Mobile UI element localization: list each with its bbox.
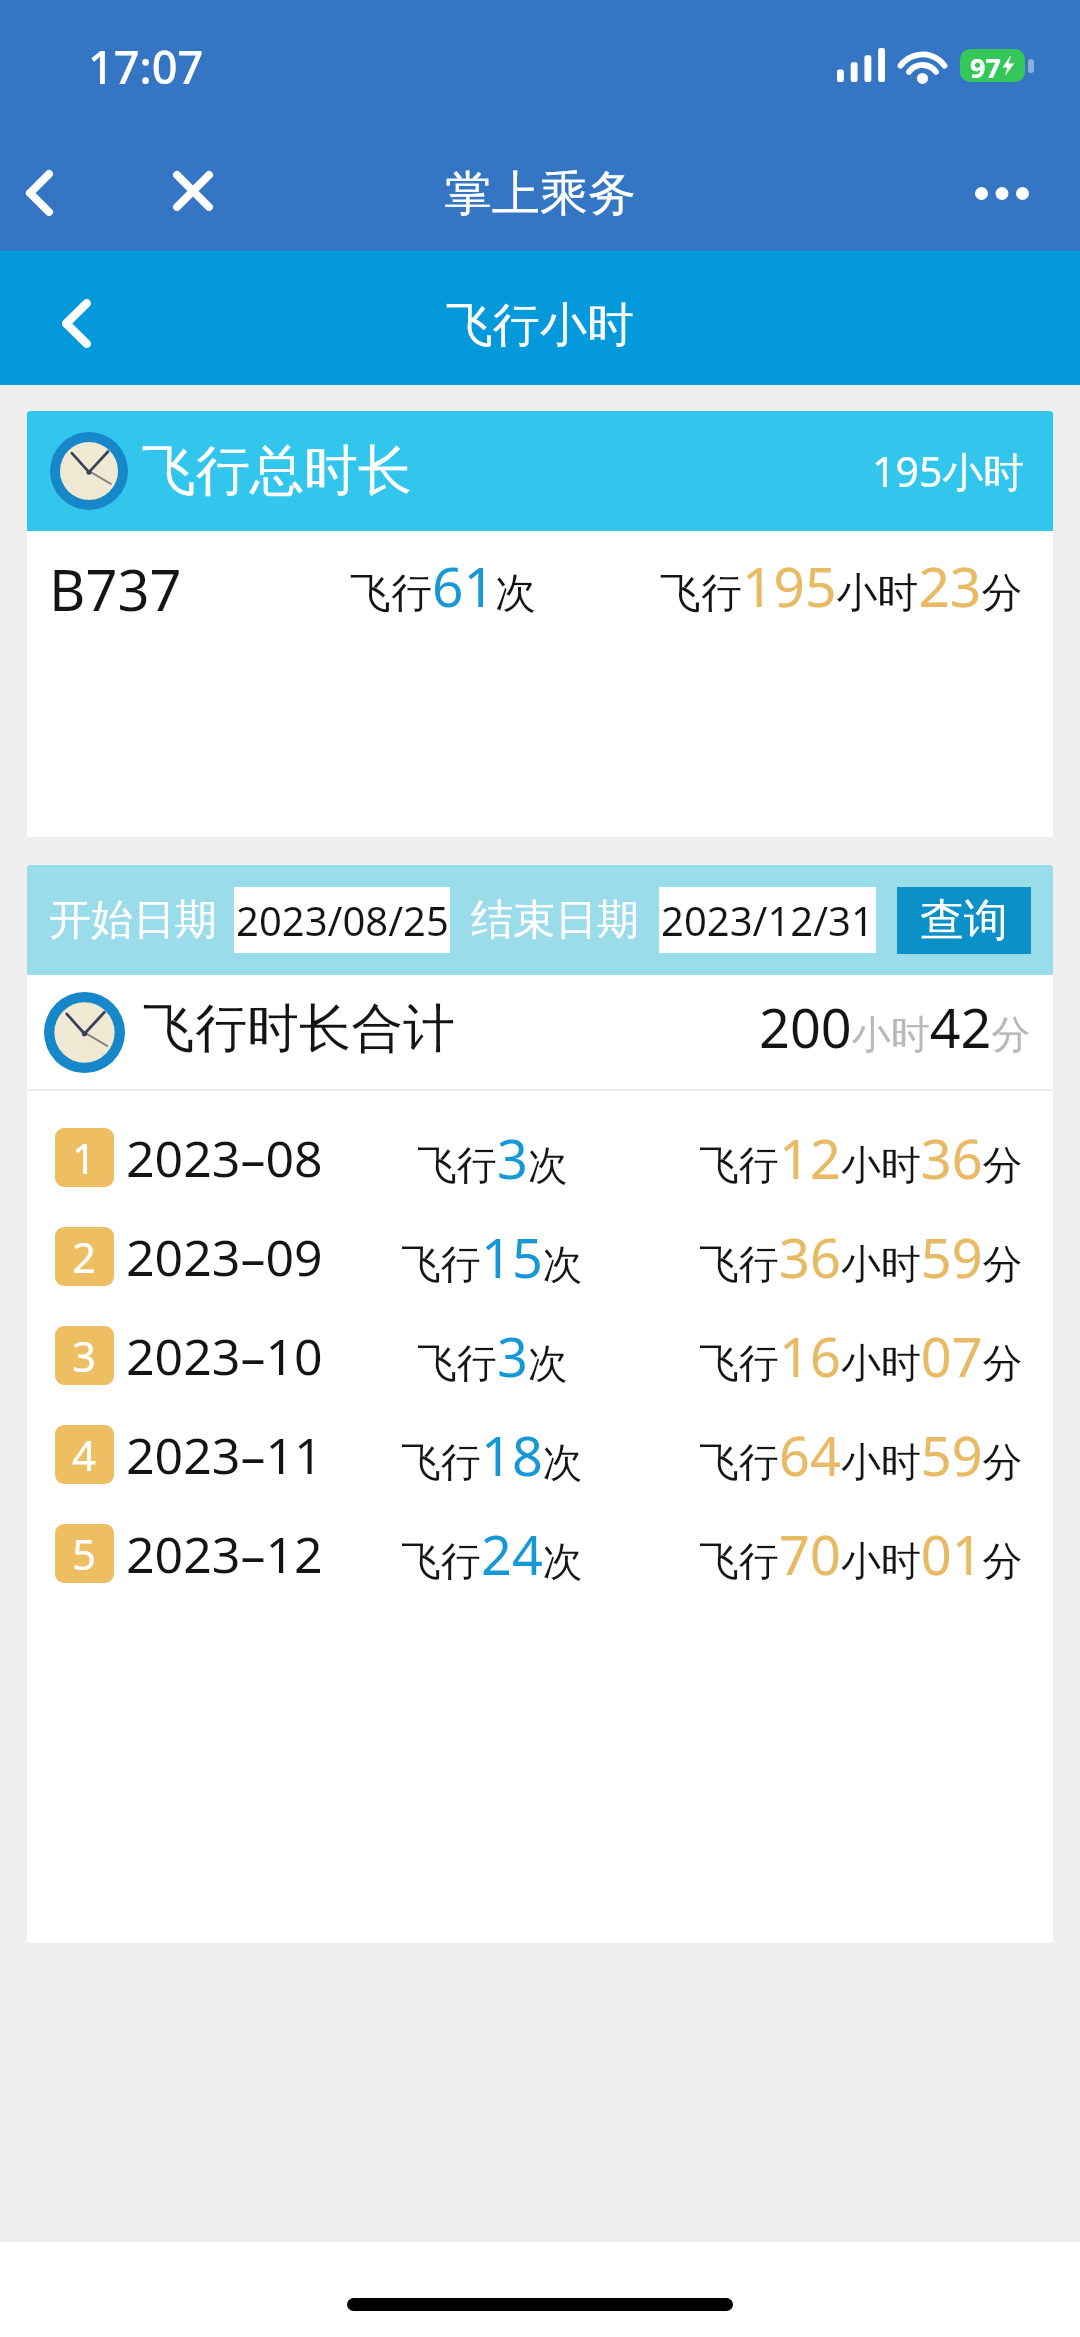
- button[interactable]: More options: [952, 143, 1052, 243]
- button[interactable]: Close: [143, 141, 243, 241]
- staticText: 5: [72, 1525, 97, 1582]
- staticText: 飞行总时长: [142, 437, 412, 505]
- staticText: 飞行36小时59分: [699, 1220, 1023, 1294]
- staticText: 195小时: [872, 443, 1025, 499]
- staticText: 飞行3次: [417, 1121, 568, 1195]
- button[interactable]: 5: [27, 1504, 1053, 1603]
- staticText: 飞行时长合计: [143, 996, 455, 1062]
- staticText: 飞行18次: [401, 1418, 583, 1492]
- button[interactable]: 4: [27, 1405, 1053, 1504]
- button[interactable]: 2023/08/25: [234, 887, 450, 953]
- staticText: 飞行24次: [401, 1517, 583, 1591]
- staticText: 飞行195小时23分: [660, 548, 1023, 623]
- staticText: B737: [49, 551, 182, 627]
- staticText: 飞行12小时36分: [699, 1121, 1023, 1195]
- staticText: 2023/12/31: [661, 893, 874, 947]
- staticText: 1: [72, 1129, 97, 1186]
- staticText: 2023/08/25: [236, 893, 449, 947]
- button[interactable]: 2023/12/31: [659, 887, 876, 953]
- button[interactable]: 1: [27, 1108, 1053, 1207]
- staticText: 3: [72, 1327, 97, 1384]
- staticText: 2023–11: [126, 1421, 323, 1489]
- staticText: 飞行64小时59分: [699, 1418, 1023, 1492]
- staticText: 飞行小时: [446, 296, 634, 355]
- staticText: 掌上乘务: [444, 164, 636, 224]
- button[interactable]: 查询: [897, 887, 1031, 954]
- staticText: 17:07: [88, 36, 204, 97]
- staticText: 4: [72, 1426, 97, 1483]
- staticText: 飞行61次: [350, 548, 536, 623]
- button[interactable]: 2: [27, 1207, 1053, 1306]
- staticText: 开始日期: [49, 894, 217, 947]
- button[interactable]: Back: [0, 143, 89, 243]
- staticText: 2023–08: [126, 1124, 323, 1192]
- staticText: 飞行70小时01分: [699, 1517, 1023, 1591]
- staticText: 飞行16小时07分: [699, 1319, 1023, 1393]
- staticText: 2023–12: [126, 1520, 323, 1588]
- staticText: 2: [72, 1228, 97, 1285]
- staticText: 查询: [920, 893, 1008, 948]
- staticText: 97: [970, 49, 1001, 82]
- staticText: 飞行15次: [401, 1220, 583, 1294]
- staticText: 2023–09: [126, 1223, 323, 1291]
- staticText: 结束日期: [471, 894, 639, 947]
- button[interactable]: 3: [27, 1306, 1053, 1405]
- button[interactable]: Back: [26, 273, 126, 373]
- staticText: 2023–10: [126, 1322, 323, 1390]
- staticText: 飞行3次: [417, 1319, 568, 1393]
- staticText: 200小时42分: [759, 990, 1031, 1064]
